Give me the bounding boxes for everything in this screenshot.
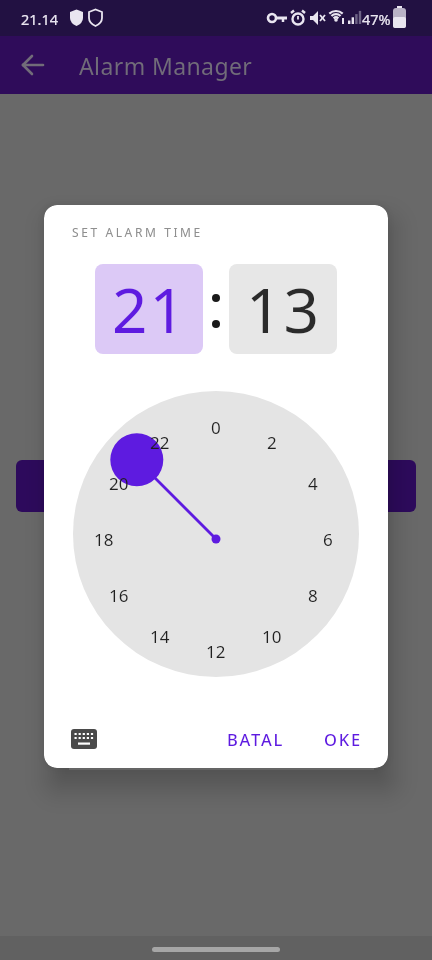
staticText: 10 — [262, 625, 282, 648]
button[interactable]: 13 — [229, 264, 337, 354]
button[interactable]: 21 — [95, 264, 203, 354]
staticText: OKE — [324, 728, 362, 750]
staticText: BATAL — [227, 728, 285, 750]
staticText: 14 — [150, 625, 170, 648]
staticText: 6 — [323, 528, 333, 551]
button[interactable] — [66, 721, 102, 757]
button[interactable]: OKE — [308, 717, 378, 761]
staticText: 18 — [94, 528, 114, 551]
staticText: 21.14 — [21, 9, 59, 29]
staticText: 0 — [211, 416, 221, 439]
staticText: 20 — [109, 472, 129, 495]
staticText: 4 — [308, 472, 318, 495]
button[interactable] — [16, 460, 416, 512]
staticText: 8 — [308, 584, 318, 607]
button[interactable]: BATAL — [212, 717, 300, 761]
staticText: 47% — [362, 9, 391, 29]
staticText: 2 — [267, 431, 277, 454]
staticText: SET ALARM TIME — [72, 224, 203, 240]
staticText: 12 — [206, 640, 226, 663]
staticText: Alarm Manager — [79, 50, 253, 81]
staticText: 22 — [150, 431, 170, 454]
staticText: 21 — [112, 267, 187, 351]
staticText: 16 — [109, 584, 129, 607]
staticText: 13 — [246, 267, 321, 351]
button[interactable] — [21, 53, 45, 77]
